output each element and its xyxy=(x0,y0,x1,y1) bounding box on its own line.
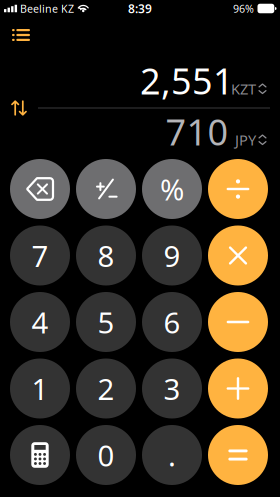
staticText: 8:39 xyxy=(128,0,152,16)
button[interactable]: 6 xyxy=(142,292,202,352)
staticText: 2 xyxy=(97,369,114,408)
button[interactable]: Multiply xyxy=(208,225,268,285)
button[interactable]: Divide xyxy=(208,159,268,219)
staticText: 96% xyxy=(233,1,254,16)
staticText: 4 xyxy=(31,302,48,341)
staticText: JPY xyxy=(235,130,256,149)
staticText: % xyxy=(160,169,184,208)
button[interactable]: 4 xyxy=(10,292,70,352)
button[interactable]: Swap currencies xyxy=(0,100,38,116)
button[interactable]: 2 xyxy=(76,358,136,418)
staticText: 5 xyxy=(97,302,114,341)
staticText: 3 xyxy=(163,369,180,408)
staticText: 2,551 xyxy=(140,57,234,104)
staticText: 9 xyxy=(163,236,180,275)
button[interactable]: JPY xyxy=(235,130,267,149)
button[interactable]: 3 xyxy=(142,358,202,418)
button[interactable]: 5 xyxy=(76,292,136,352)
button[interactable]: Delete xyxy=(10,159,70,219)
button[interactable]: Calculator xyxy=(10,425,70,485)
staticText: 0 xyxy=(97,435,114,474)
button[interactable]: Currency list xyxy=(0,19,42,55)
staticText: . xyxy=(168,435,176,474)
button[interactable]: KZT xyxy=(231,79,267,98)
staticText: 7 xyxy=(31,236,48,275)
staticText: Beeline KZ xyxy=(20,1,74,16)
button[interactable]: Plus xyxy=(208,358,268,418)
staticText: KZT xyxy=(231,79,256,98)
button[interactable]: 0 xyxy=(76,425,136,485)
staticText: 6 xyxy=(163,302,180,341)
staticText: 710 xyxy=(165,108,228,155)
button[interactable]: Equals xyxy=(208,425,268,485)
button[interactable]: 7 xyxy=(10,225,70,285)
staticText: 1 xyxy=(31,369,48,408)
button[interactable]: 8 xyxy=(76,225,136,285)
button[interactable]: Minus xyxy=(208,292,268,352)
button[interactable]: Toggle sign xyxy=(76,159,136,219)
button[interactable]: . xyxy=(142,425,202,485)
button[interactable]: 1 xyxy=(10,358,70,418)
button[interactable]: % xyxy=(142,159,202,219)
button[interactable]: 9 xyxy=(142,225,202,285)
staticText: 8 xyxy=(97,236,114,275)
